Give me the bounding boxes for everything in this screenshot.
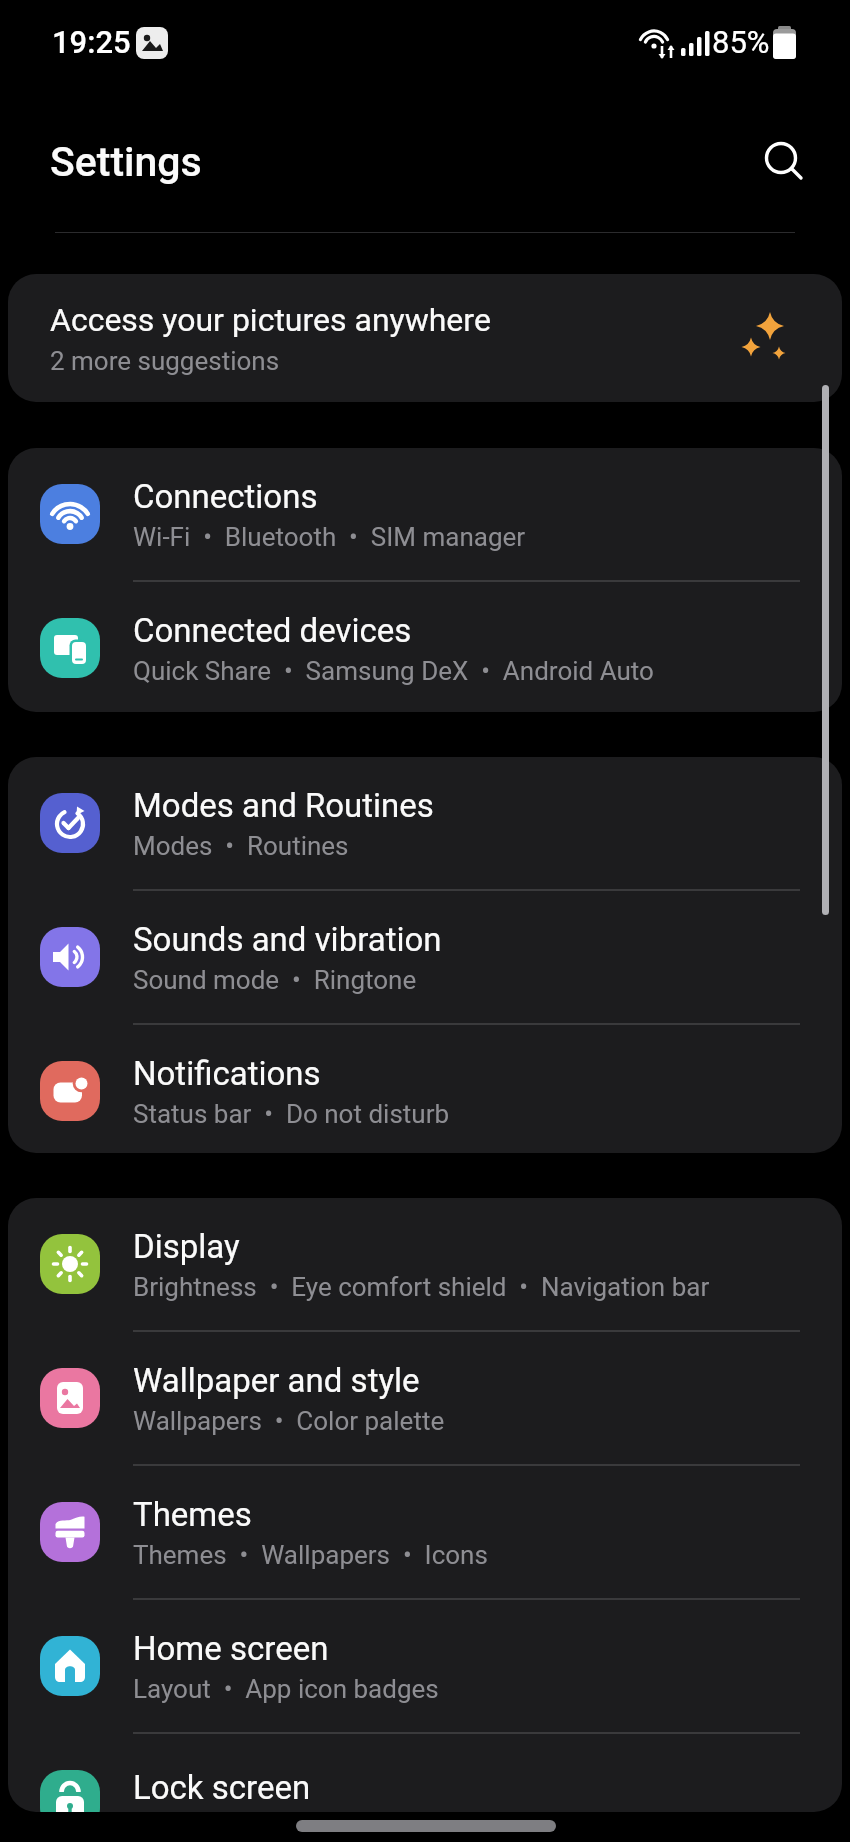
staticText: 2 more suggestions [50, 346, 280, 376]
button[interactable] [755, 132, 811, 188]
staticText: Display [133, 1227, 240, 1266]
button[interactable]: Themes [8, 1466, 842, 1598]
staticText: Connected devices [133, 611, 412, 650]
staticText: Themes [133, 1495, 252, 1534]
staticText: Notifications [133, 1054, 321, 1093]
button[interactable]: Home screen [8, 1600, 842, 1732]
staticText: Themes • Wallpapers • Icons [133, 1540, 488, 1570]
staticText: Modes and Routines [133, 786, 434, 825]
button[interactable]: Display [8, 1198, 842, 1330]
button[interactable]: Wallpaper and style [8, 1332, 842, 1464]
staticText: Wallpapers • Color palette [133, 1406, 445, 1436]
staticText: Layout • App icon badges [133, 1674, 439, 1704]
button[interactable]: Connected devices [8, 582, 842, 712]
staticText: Status bar • Do not disturb [133, 1099, 450, 1129]
button[interactable]: Lock screen [8, 1734, 842, 1812]
button[interactable]: Connections [8, 448, 842, 580]
staticText: Settings [50, 138, 202, 186]
staticText: Wi-Fi • Bluetooth • SIM manager [133, 522, 526, 552]
staticText: Modes • Routines [133, 831, 349, 861]
staticText: 85% [712, 24, 770, 60]
staticText: Lock screen [133, 1768, 311, 1807]
staticText: Quick Share • Samsung DeX • Android Auto [133, 656, 654, 686]
staticText: Wallpaper and style [133, 1361, 420, 1400]
staticText: Brightness • Eye comfort shield • Naviga… [133, 1272, 710, 1302]
button[interactable]: Sounds and vibration [8, 891, 842, 1023]
button[interactable]: Notifications [8, 1025, 842, 1153]
staticText: Sound mode • Ringtone [133, 965, 417, 995]
button[interactable]: Modes and Routines [8, 757, 842, 889]
button[interactable]: Access your pictures anywhere [8, 274, 842, 402]
staticText: Home screen [133, 1629, 329, 1668]
staticText: Connections [133, 477, 318, 516]
staticText: Access your pictures anywhere [50, 301, 491, 339]
staticText: 19:25 [52, 24, 131, 60]
staticText: Sounds and vibration [133, 920, 442, 959]
